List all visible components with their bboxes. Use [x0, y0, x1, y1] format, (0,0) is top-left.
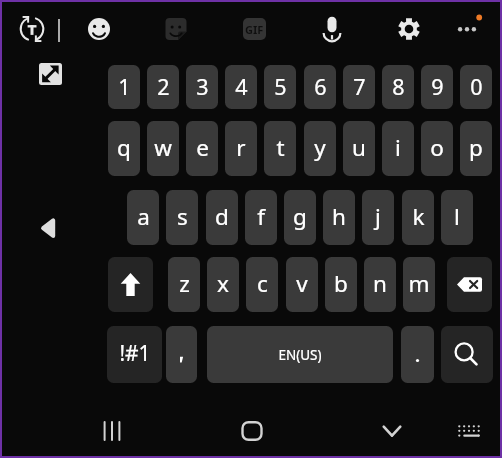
staticText: e [196, 132, 209, 163]
button[interactable]: z [168, 257, 200, 312]
staticText: 5 [274, 72, 287, 101]
staticText: c [257, 268, 268, 299]
button[interactable]: l [441, 190, 473, 245]
button[interactable]: Translate [14, 11, 50, 47]
button[interactable]: 7 [343, 65, 375, 109]
button[interactable]: t [264, 121, 296, 176]
button[interactable]: k [402, 190, 434, 245]
button[interactable]: y [304, 121, 336, 176]
button[interactable]: Home [230, 409, 274, 453]
button[interactable]: GIF [243, 18, 266, 40]
button[interactable]: 9 [421, 65, 453, 109]
staticText: i [395, 132, 401, 163]
button[interactable]: m [403, 257, 435, 312]
button[interactable]: u [343, 121, 375, 176]
button[interactable]: a [127, 190, 159, 245]
button[interactable]: Emoji [84, 14, 114, 44]
button[interactable]: v [286, 257, 318, 312]
staticText: 1 [118, 72, 131, 101]
staticText: l [454, 201, 460, 232]
staticText: 3 [196, 72, 209, 101]
staticText: p [469, 132, 483, 163]
staticText: j [375, 201, 381, 232]
button[interactable]: 6 [304, 65, 336, 109]
button[interactable]: !#1 [107, 326, 162, 383]
button[interactable]: Backspace [447, 257, 492, 312]
button[interactable]: 4 [225, 65, 257, 109]
staticText: z [179, 268, 190, 299]
button[interactable]: Search [441, 326, 493, 383]
button[interactable]: 3 [186, 65, 218, 109]
staticText: b [334, 268, 348, 299]
button[interactable]: o [421, 121, 453, 176]
staticText: m [408, 268, 430, 299]
button[interactable]: More options [447, 6, 487, 46]
staticText: u [352, 132, 366, 163]
button[interactable]: i [382, 121, 414, 176]
staticText: x [217, 268, 229, 299]
staticText: GIF [245, 22, 264, 37]
button[interactable]: c [246, 257, 278, 312]
staticText: t [276, 132, 285, 163]
staticText: s [177, 201, 188, 232]
button[interactable]: Stickers [161, 14, 191, 44]
staticText: w [154, 132, 172, 163]
button[interactable]: q [108, 121, 140, 176]
button[interactable]: 0 [460, 65, 492, 109]
button[interactable]: b [325, 257, 357, 312]
staticText: r [236, 132, 246, 163]
staticText: 0 [470, 72, 483, 101]
button[interactable]: 1 [108, 65, 140, 109]
button[interactable]: Recents [90, 409, 134, 453]
staticText: 9 [431, 72, 444, 101]
button[interactable]: Expand panel [39, 214, 59, 243]
staticText: !#1 [119, 339, 151, 368]
staticText: y [314, 132, 326, 163]
button[interactable]: Period [401, 326, 434, 383]
button[interactable]: g [284, 190, 316, 245]
staticText: 4 [235, 72, 248, 101]
button[interactable]: Shift [108, 257, 153, 312]
button[interactable]: j [362, 190, 394, 245]
button[interactable]: Settings [394, 14, 424, 44]
button[interactable]: Change keyboard [447, 409, 491, 453]
button[interactable]: 2 [147, 65, 179, 109]
button[interactable]: EN(US) [207, 326, 393, 383]
button[interactable]: Resize keyboard [39, 63, 62, 85]
staticText: 8 [392, 72, 405, 101]
button[interactable]: p [460, 121, 492, 176]
button[interactable]: d [206, 190, 238, 245]
staticText: EN(US) [278, 346, 322, 364]
button[interactable]: f [245, 190, 277, 245]
staticText: d [215, 201, 229, 232]
button[interactable]: 8 [382, 65, 414, 109]
staticText: a [137, 201, 150, 232]
button[interactable]: Voice input [316, 12, 348, 46]
button[interactable]: e [186, 121, 218, 176]
staticText: o [430, 132, 444, 163]
staticText: n [373, 268, 387, 299]
button[interactable]: Comma [166, 326, 197, 383]
staticText: f [257, 201, 265, 232]
button[interactable]: s [166, 190, 198, 245]
button[interactable]: w [147, 121, 179, 176]
button[interactable]: n [364, 257, 396, 312]
staticText: k [412, 201, 425, 232]
staticText: 7 [353, 72, 366, 101]
button[interactable]: Hide keyboard [370, 409, 414, 453]
staticText: 2 [157, 72, 170, 101]
staticText: v [296, 268, 308, 299]
staticText: h [332, 201, 346, 232]
staticText: 6 [314, 72, 327, 101]
button[interactable]: r [225, 121, 257, 176]
staticText: q [117, 132, 131, 163]
button[interactable]: x [207, 257, 239, 312]
staticText: g [293, 201, 307, 232]
button[interactable]: 5 [264, 65, 296, 109]
button[interactable]: h [323, 190, 355, 245]
